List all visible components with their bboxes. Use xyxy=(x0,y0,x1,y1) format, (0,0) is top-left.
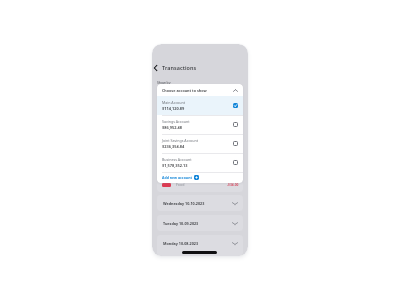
staticText: Transactions xyxy=(162,64,197,71)
staticText: $86,952.48 xyxy=(162,125,183,130)
button[interactable]: Monday 10-08-2023 xyxy=(157,235,243,256)
button[interactable]: Joint Savings Account xyxy=(157,134,243,153)
staticText: $236,354.84 xyxy=(162,144,185,149)
staticText: Food xyxy=(176,182,185,187)
staticText: Main Account xyxy=(162,100,186,105)
staticText: Choose account to show xyxy=(162,88,233,93)
staticText: Tuesday 10-09-2023 xyxy=(163,221,199,226)
staticText: Wednesday 10-10-2023 xyxy=(163,201,205,206)
staticText: -$34.00 xyxy=(227,182,239,186)
button[interactable]: Food xyxy=(157,181,243,192)
button[interactable]: Savings Account xyxy=(157,115,243,134)
staticText: Joint Savings Account xyxy=(162,138,199,143)
staticText: $114,120.89 xyxy=(162,106,185,111)
button[interactable]: Back xyxy=(152,63,160,72)
button[interactable]: Main Account xyxy=(157,96,243,115)
staticText: Add new account xyxy=(162,175,192,180)
button[interactable]: Tuesday 10-09-2023 xyxy=(157,215,243,231)
button[interactable]: Choose account to show xyxy=(157,84,243,96)
staticText: $1,578,352.13 xyxy=(162,163,188,168)
staticText: Business Account xyxy=(162,157,192,162)
button[interactable]: Business Account xyxy=(157,153,243,172)
button[interactable]: Wednesday 10-10-2023 xyxy=(157,195,243,211)
staticText: Monday 10-08-2023 xyxy=(163,241,199,246)
staticText: Savings Account xyxy=(162,119,190,124)
staticText: Show by xyxy=(157,80,171,85)
button[interactable]: Add new account xyxy=(157,172,243,183)
